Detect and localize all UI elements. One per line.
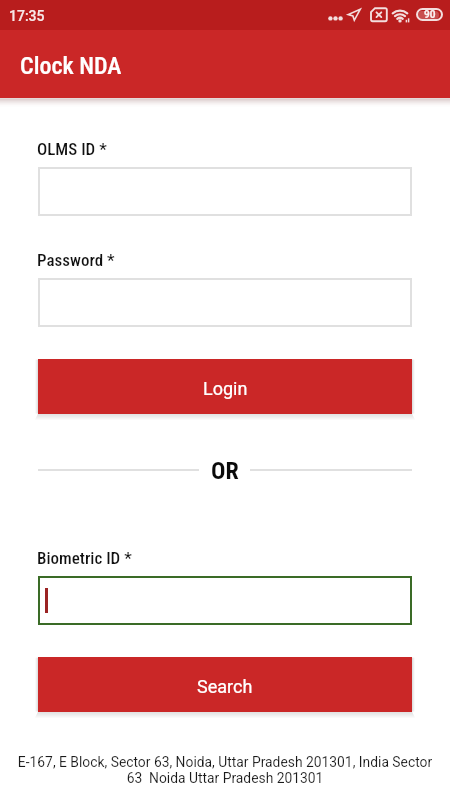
button[interactable]: Biometric ID input field <box>38 576 412 625</box>
staticText: E-167, E Block, Sector 63, Noida, Uttar … <box>10 754 440 787</box>
button[interactable]: Password input field <box>38 278 412 327</box>
staticText: 17:35 <box>9 8 45 24</box>
staticText: Clock NDA <box>20 52 122 80</box>
button[interactable]: Search <box>38 657 412 712</box>
staticText: 90 <box>424 9 436 21</box>
staticText: OLMS ID * <box>37 139 107 159</box>
staticText: Biometric ID * <box>37 548 132 568</box>
staticText: Login <box>203 378 248 399</box>
staticText: Password * <box>37 250 115 270</box>
staticText: OR <box>211 457 239 485</box>
staticText: Search <box>197 676 253 697</box>
button[interactable]: OLMS ID input field <box>38 167 412 216</box>
button[interactable]: Login <box>38 359 412 414</box>
